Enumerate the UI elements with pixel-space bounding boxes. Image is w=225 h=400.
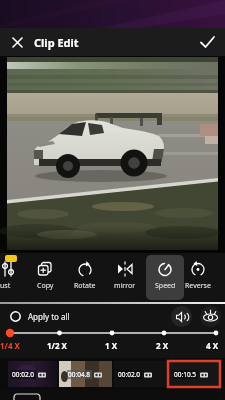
button[interactable] [189, 28, 225, 56]
staticText: Apply to all [28, 311, 70, 322]
button[interactable] [0, 28, 34, 56]
button[interactable] [171, 306, 192, 327]
button[interactable]: Apply to all [0, 311, 70, 322]
staticText: Copy [37, 281, 54, 291]
staticText: 1/4 X [0, 340, 20, 351]
button[interactable]: Rotate [65, 253, 105, 302]
staticText: 1/2 X [47, 340, 67, 351]
staticText: 1 X [105, 340, 118, 351]
staticText: ust [0, 281, 11, 291]
button[interactable]: 00:02.0 [8, 361, 57, 387]
staticText: mirror [114, 281, 136, 291]
button[interactable]: 1/4 X [0, 328, 225, 358]
button[interactable]: mirror [105, 253, 145, 302]
button[interactable]: 00:02.0 [114, 361, 166, 387]
button[interactable]: ust [0, 253, 25, 302]
staticText: Clip Edit [34, 35, 79, 50]
button[interactable]: Copy [25, 253, 65, 302]
button[interactable] [200, 306, 221, 327]
staticText: 00:04.8 [68, 370, 91, 379]
staticText: 4 X [206, 340, 219, 351]
staticText: Speed [155, 281, 176, 291]
button[interactable]: 00:10.5 [168, 361, 220, 387]
button[interactable]: Reverse [185, 253, 210, 302]
staticText: 2 X [156, 340, 169, 351]
staticText: 00:02.0 [118, 370, 141, 379]
staticText: 00:02.0 [12, 370, 35, 379]
staticText: Reverse [185, 281, 211, 291]
button[interactable]: Speed [145, 253, 185, 302]
button[interactable]: 00:04.8 [59, 361, 112, 387]
staticText: Rotate [74, 281, 96, 291]
staticText: 00:10.5 [174, 370, 197, 379]
